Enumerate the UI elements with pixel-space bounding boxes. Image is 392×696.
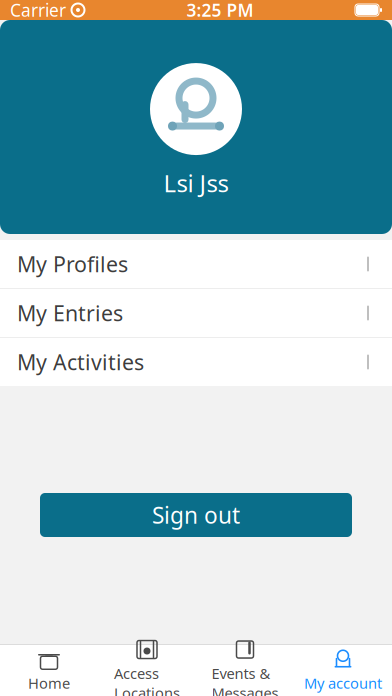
staticText: [66, 0, 71, 21]
staticText: Home: [28, 673, 70, 693]
button[interactable]: Home: [0, 645, 98, 696]
button[interactable]: My Profiles: [0, 240, 392, 288]
button[interactable]: My Entries: [0, 289, 392, 337]
staticText: Lsi Jss: [163, 167, 228, 199]
staticText: Sign out: [152, 500, 240, 530]
staticText: Access Locations: [114, 663, 180, 696]
staticText: My account: [304, 673, 382, 693]
staticText: 3:25 PM: [186, 0, 253, 21]
button[interactable]: Access Locations: [98, 645, 196, 696]
staticText: My Entries: [17, 299, 123, 327]
staticText: Events & Messages: [211, 663, 278, 696]
button[interactable]: Events & Messages: [196, 645, 294, 696]
button[interactable]: My Activities: [0, 338, 392, 386]
button[interactable]: Sign out: [40, 493, 352, 537]
staticText: My Activities: [17, 348, 144, 376]
staticText: My Profiles: [17, 250, 128, 278]
staticText: Carrier: [10, 0, 66, 21]
button[interactable]: My account: [294, 645, 392, 696]
